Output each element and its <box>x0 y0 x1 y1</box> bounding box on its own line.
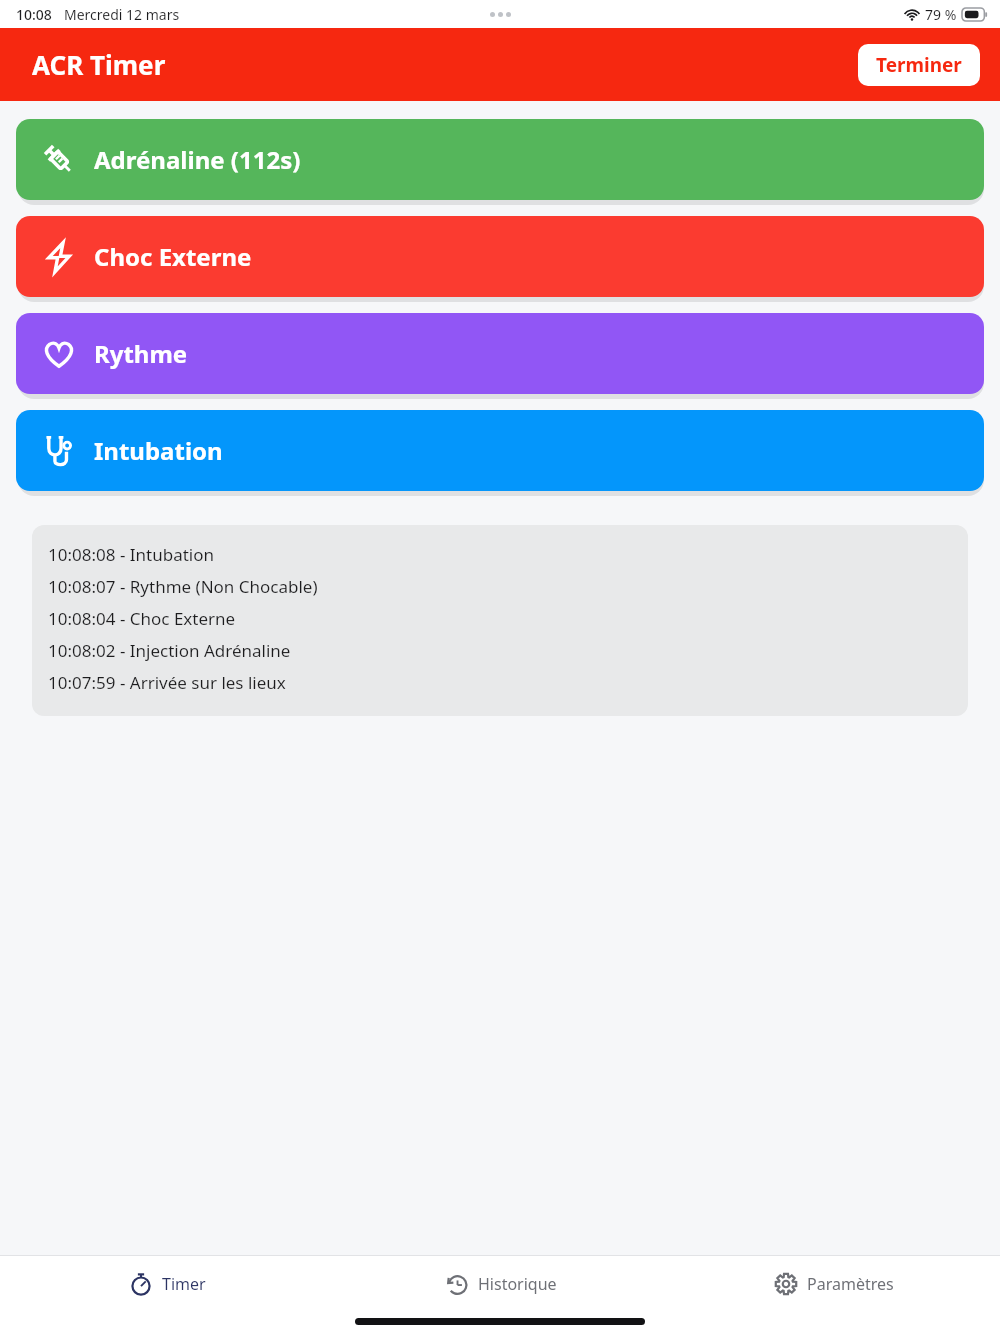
staticText: 10:08 <box>16 5 52 24</box>
staticText: Adrénaline (112s) <box>94 143 301 176</box>
staticText: Paramètres <box>807 1273 894 1295</box>
staticText: 10:08:07 - Rythme (Non Chocable) <box>48 575 318 598</box>
staticText: Timer <box>162 1273 206 1295</box>
button[interactable]: 10:08:08 - Intubation <box>32 525 968 716</box>
staticText: Rythme <box>94 337 188 370</box>
staticText: Historique <box>478 1273 557 1295</box>
staticText: 10:08:08 - Intubation <box>48 543 214 566</box>
staticText: Intubation <box>94 434 223 467</box>
button[interactable]: Choc Externe <box>16 216 984 297</box>
button[interactable]: Adrénaline (112s) <box>16 119 984 200</box>
staticText: Terminer <box>876 52 962 78</box>
staticText: ACR Timer <box>32 47 166 82</box>
staticText: 79 % <box>925 5 957 24</box>
button[interactable]: Timer <box>0 1256 334 1312</box>
button[interactable]: Intubation <box>16 410 984 491</box>
staticText: Choc Externe <box>94 240 252 273</box>
staticText: 10:08:02 - Injection Adrénaline <box>48 639 291 662</box>
staticText: 10:08:04 - Choc Externe <box>48 607 236 630</box>
button[interactable]: Historique <box>334 1256 667 1312</box>
staticText: Mercredi 12 mars <box>64 5 180 24</box>
button[interactable]: Terminer <box>858 44 980 86</box>
staticText: 10:07:59 - Arrivée sur les lieux <box>48 671 286 694</box>
button[interactable]: Rythme <box>16 313 984 394</box>
button[interactable]: Paramètres <box>667 1256 1000 1312</box>
